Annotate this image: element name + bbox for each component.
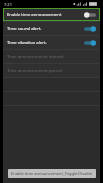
button[interactable]: Enable time announcement	[3, 8, 100, 21]
button[interactable]: Time sound alert.	[3, 22, 100, 35]
button[interactable]: Time vibration alert.	[3, 36, 100, 49]
staticText: Time sound alert.	[7, 26, 82, 32]
staticText: Time announcement interval	[7, 54, 64, 60]
button[interactable]: Toggle on	[84, 40, 96, 46]
staticText: Time vibration alert.	[7, 40, 82, 46]
staticText: Time announcement period	[7, 68, 62, 74]
button[interactable]: Toggle on	[84, 26, 96, 32]
staticText: Enable time announcement_Toggle:Disable	[11, 171, 93, 176]
staticText: 7:21	[4, 2, 12, 7]
staticText: Enable time announcement	[7, 12, 82, 18]
button[interactable]: Toggle off	[84, 12, 96, 18]
button[interactable]: Time announcement interval	[3, 50, 100, 63]
button[interactable]: Time announcement period	[3, 64, 100, 77]
